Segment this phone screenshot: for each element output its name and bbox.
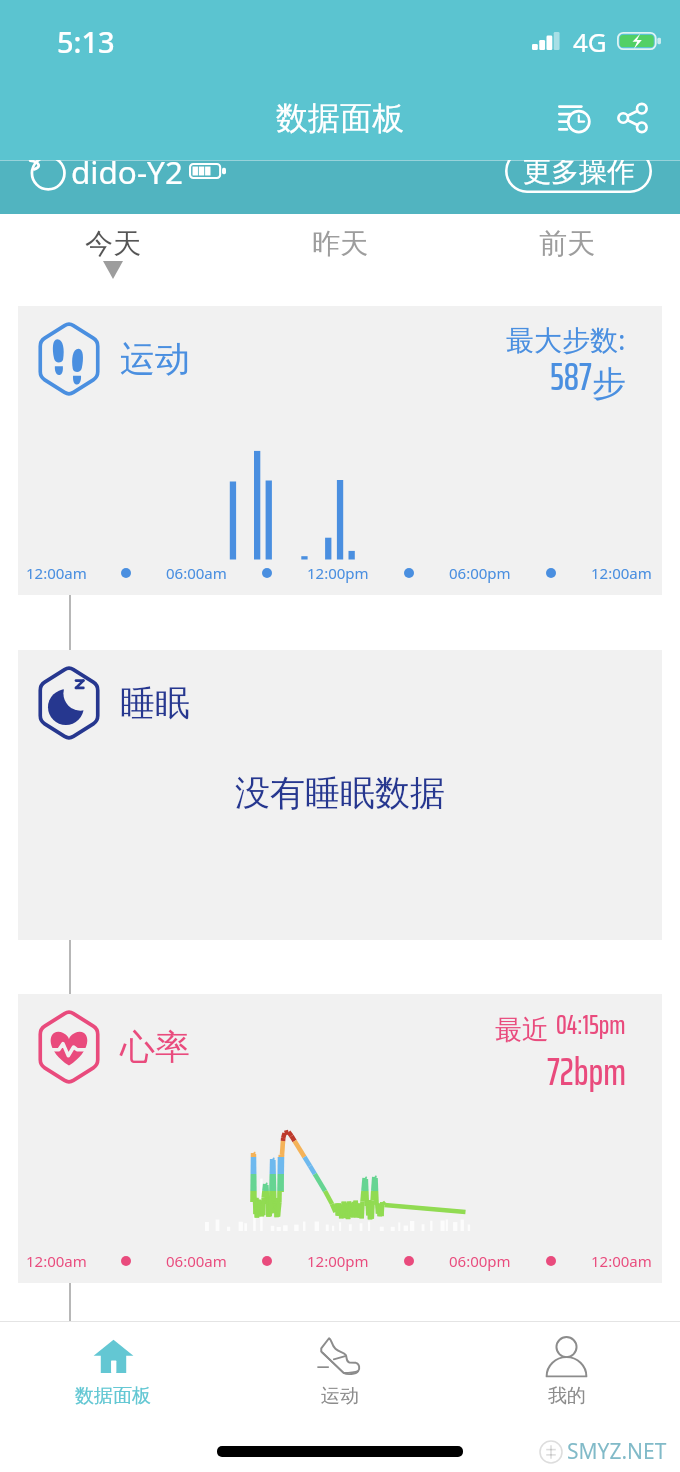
staticText: 06:00am bbox=[166, 563, 227, 583]
staticText: 12:00pm bbox=[307, 1251, 369, 1271]
staticText: 昨天 bbox=[312, 226, 368, 261]
button[interactable]: 数据面板 bbox=[0, 1322, 226, 1430]
staticText: SMYZ.NET bbox=[567, 1437, 667, 1466]
button[interactable]: 运动 bbox=[226, 1322, 453, 1430]
staticText: 今天 bbox=[85, 226, 141, 261]
staticText: 心率 bbox=[120, 1025, 190, 1069]
staticText: 5:13 bbox=[57, 22, 115, 61]
staticText: 没有睡眠数据 bbox=[235, 771, 445, 815]
staticText: 最大步数: bbox=[506, 320, 626, 358]
staticText: 06:00pm bbox=[449, 1251, 511, 1271]
button[interactable]: 今天 bbox=[0, 214, 226, 306]
staticText: 4G bbox=[573, 24, 607, 59]
staticText: 72bpm bbox=[547, 1042, 626, 1102]
staticText: dido-Y2 bbox=[71, 160, 183, 193]
staticText: 12:00am bbox=[591, 1251, 652, 1271]
staticText: 运动 bbox=[120, 337, 190, 381]
staticText: 最近 bbox=[495, 1013, 549, 1047]
staticText: 运动 bbox=[321, 1384, 359, 1408]
button[interactable]: 睡眠 bbox=[18, 650, 662, 940]
button[interactable]: 我的 bbox=[453, 1322, 680, 1430]
staticText: 12:00am bbox=[591, 563, 652, 583]
staticText: 12:00pm bbox=[307, 563, 369, 583]
button[interactable]: 更多操作 bbox=[505, 160, 652, 193]
staticText: 04:15pm bbox=[556, 1003, 626, 1045]
staticText: 06:00pm bbox=[449, 563, 511, 583]
button[interactable]: 昨天 bbox=[226, 214, 453, 306]
staticText: 睡眠 bbox=[120, 681, 190, 725]
button[interactable]: Share bbox=[606, 92, 658, 144]
staticText: 我的 bbox=[548, 1384, 586, 1408]
staticText: 步 bbox=[592, 362, 626, 405]
staticText: 587 bbox=[550, 347, 592, 407]
staticText: 12:00am bbox=[26, 1251, 87, 1271]
staticText: 12:00am bbox=[26, 563, 87, 583]
button[interactable]: 前天 bbox=[453, 214, 680, 306]
staticText: 06:00am bbox=[166, 1251, 227, 1271]
button[interactable]: History bbox=[548, 92, 600, 144]
button[interactable]: 运动 bbox=[18, 306, 662, 595]
staticText: 数据面板 bbox=[276, 98, 404, 138]
staticText: 数据面板 bbox=[75, 1384, 151, 1408]
button[interactable]: 心率 bbox=[18, 994, 662, 1283]
staticText: 更多操作 bbox=[523, 160, 635, 189]
staticText: 前天 bbox=[539, 226, 595, 261]
